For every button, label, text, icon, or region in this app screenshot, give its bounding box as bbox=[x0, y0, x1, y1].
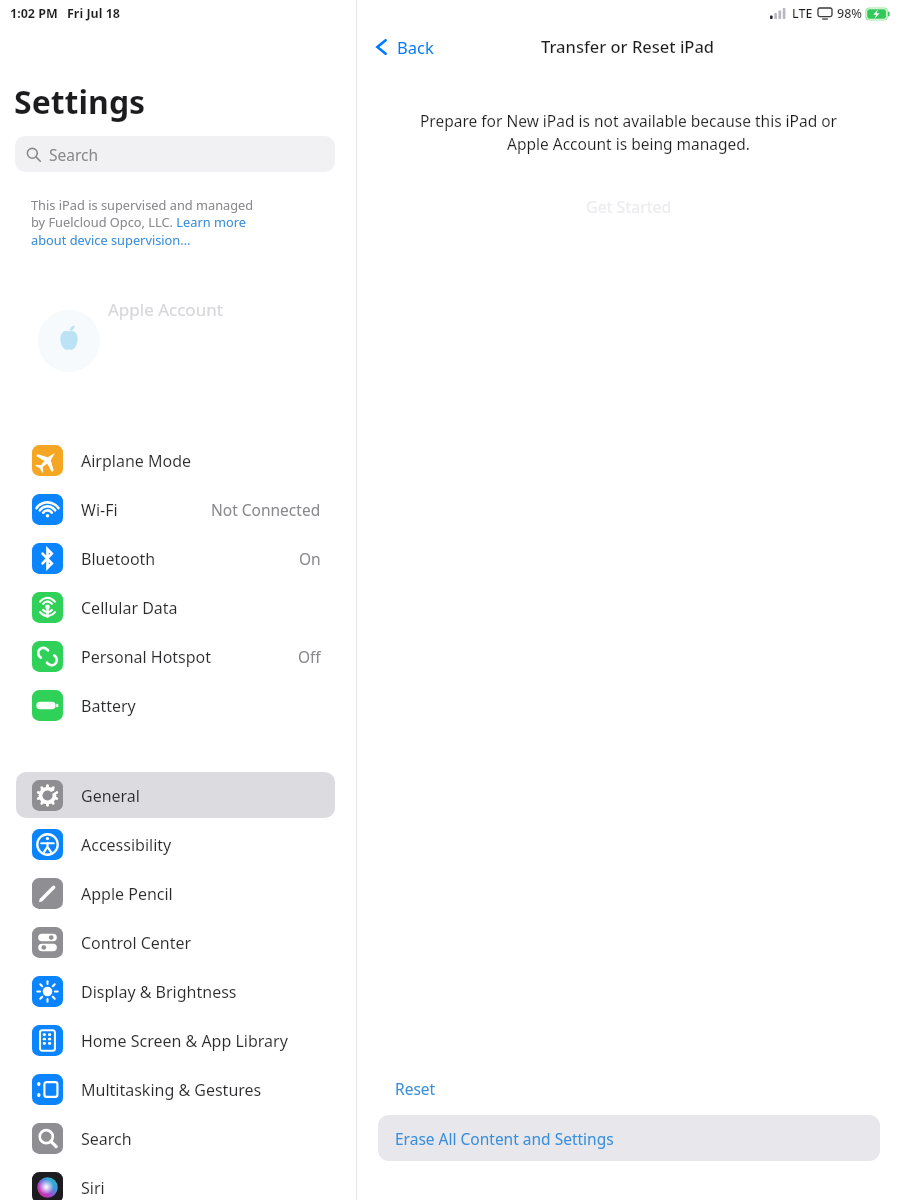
staticText: Bluetooth bbox=[81, 548, 156, 570]
staticText: Apple Account bbox=[108, 298, 223, 321]
staticText: Prepare for New iPad is not available be… bbox=[387, 110, 870, 155]
staticText: Erase All Content and Settings bbox=[395, 1128, 614, 1149]
staticText: Search bbox=[49, 144, 99, 165]
button[interactable]: Reset bbox=[395, 1078, 436, 1099]
staticText: 98% bbox=[837, 5, 862, 22]
staticText: Settings bbox=[14, 80, 146, 124]
staticText: Wi-Fi bbox=[81, 499, 118, 521]
staticText: Display & Brightness bbox=[81, 981, 237, 1003]
button[interactable]: Personal Hotspot bbox=[16, 633, 335, 679]
staticText: Battery bbox=[81, 695, 136, 717]
staticText: Multitasking & Gestures bbox=[81, 1079, 262, 1101]
staticText: Transfer or Reset iPad bbox=[541, 35, 715, 57]
button[interactable]: Home Screen & App Library bbox=[16, 1017, 335, 1063]
button[interactable]: Search bbox=[15, 136, 335, 172]
button[interactable]: Multitasking & Gestures bbox=[16, 1066, 335, 1112]
button[interactable]: Airplane Mode bbox=[16, 437, 335, 483]
staticText: General bbox=[81, 785, 140, 807]
staticText: Off bbox=[298, 646, 321, 667]
button[interactable]: Back bbox=[369, 30, 434, 64]
staticText: Reset bbox=[395, 1078, 436, 1099]
button[interactable]: General bbox=[16, 772, 335, 818]
staticText: Fri Jul 18 bbox=[67, 5, 120, 22]
button[interactable]: Apple Pencil bbox=[16, 870, 335, 916]
staticText: LTE bbox=[792, 5, 813, 22]
staticText: On bbox=[299, 548, 321, 569]
staticText: Siri bbox=[81, 1177, 105, 1199]
staticText: Search bbox=[81, 1128, 132, 1150]
staticText: Cellular Data bbox=[81, 597, 178, 619]
button[interactable]: Erase All Content and Settings bbox=[378, 1115, 880, 1161]
button[interactable]: Battery bbox=[16, 682, 335, 728]
button[interactable]: Wi-Fi bbox=[16, 486, 335, 532]
button[interactable]: Search bbox=[16, 1115, 335, 1161]
staticText: Accessibility bbox=[81, 834, 172, 856]
staticText: Personal Hotspot bbox=[81, 646, 212, 668]
button[interactable]: Accessibility bbox=[16, 821, 335, 867]
staticText: Apple Pencil bbox=[81, 883, 173, 905]
staticText: Control Center bbox=[81, 932, 192, 954]
staticText: This iPad is supervised and managed by F… bbox=[31, 196, 254, 248]
staticText: 1:02 PM bbox=[10, 5, 58, 22]
staticText: Get Started bbox=[586, 196, 672, 218]
staticText: Home Screen & App Library bbox=[81, 1030, 288, 1052]
staticText: Airplane Mode bbox=[81, 450, 192, 472]
button[interactable]: Bluetooth bbox=[16, 535, 335, 581]
staticText: Back bbox=[397, 36, 434, 58]
button[interactable]: Siri bbox=[16, 1164, 335, 1200]
other: Back bbox=[375, 37, 388, 57]
button[interactable]: Display & Brightness bbox=[16, 968, 335, 1014]
button[interactable]: Cellular Data bbox=[16, 584, 335, 630]
staticText: Not Connected bbox=[211, 499, 321, 520]
button[interactable]: Control Center bbox=[16, 919, 335, 965]
